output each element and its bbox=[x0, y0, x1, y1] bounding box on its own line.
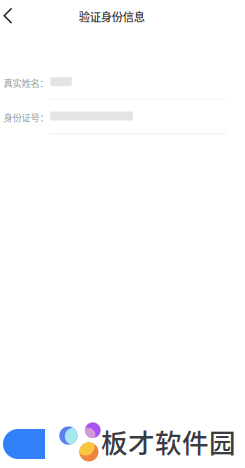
button[interactable]: 身份证号： bbox=[0, 99, 245, 134]
button[interactable]: 真实姓名： bbox=[0, 65, 245, 99]
staticText: 真实姓名： bbox=[3, 76, 48, 89]
staticText: 身份证号： bbox=[3, 110, 48, 124]
staticText: 板才软件园 bbox=[101, 422, 236, 461]
button[interactable]: Back bbox=[0, 2, 20, 30]
staticText: 验证身份信息 bbox=[79, 8, 145, 25]
